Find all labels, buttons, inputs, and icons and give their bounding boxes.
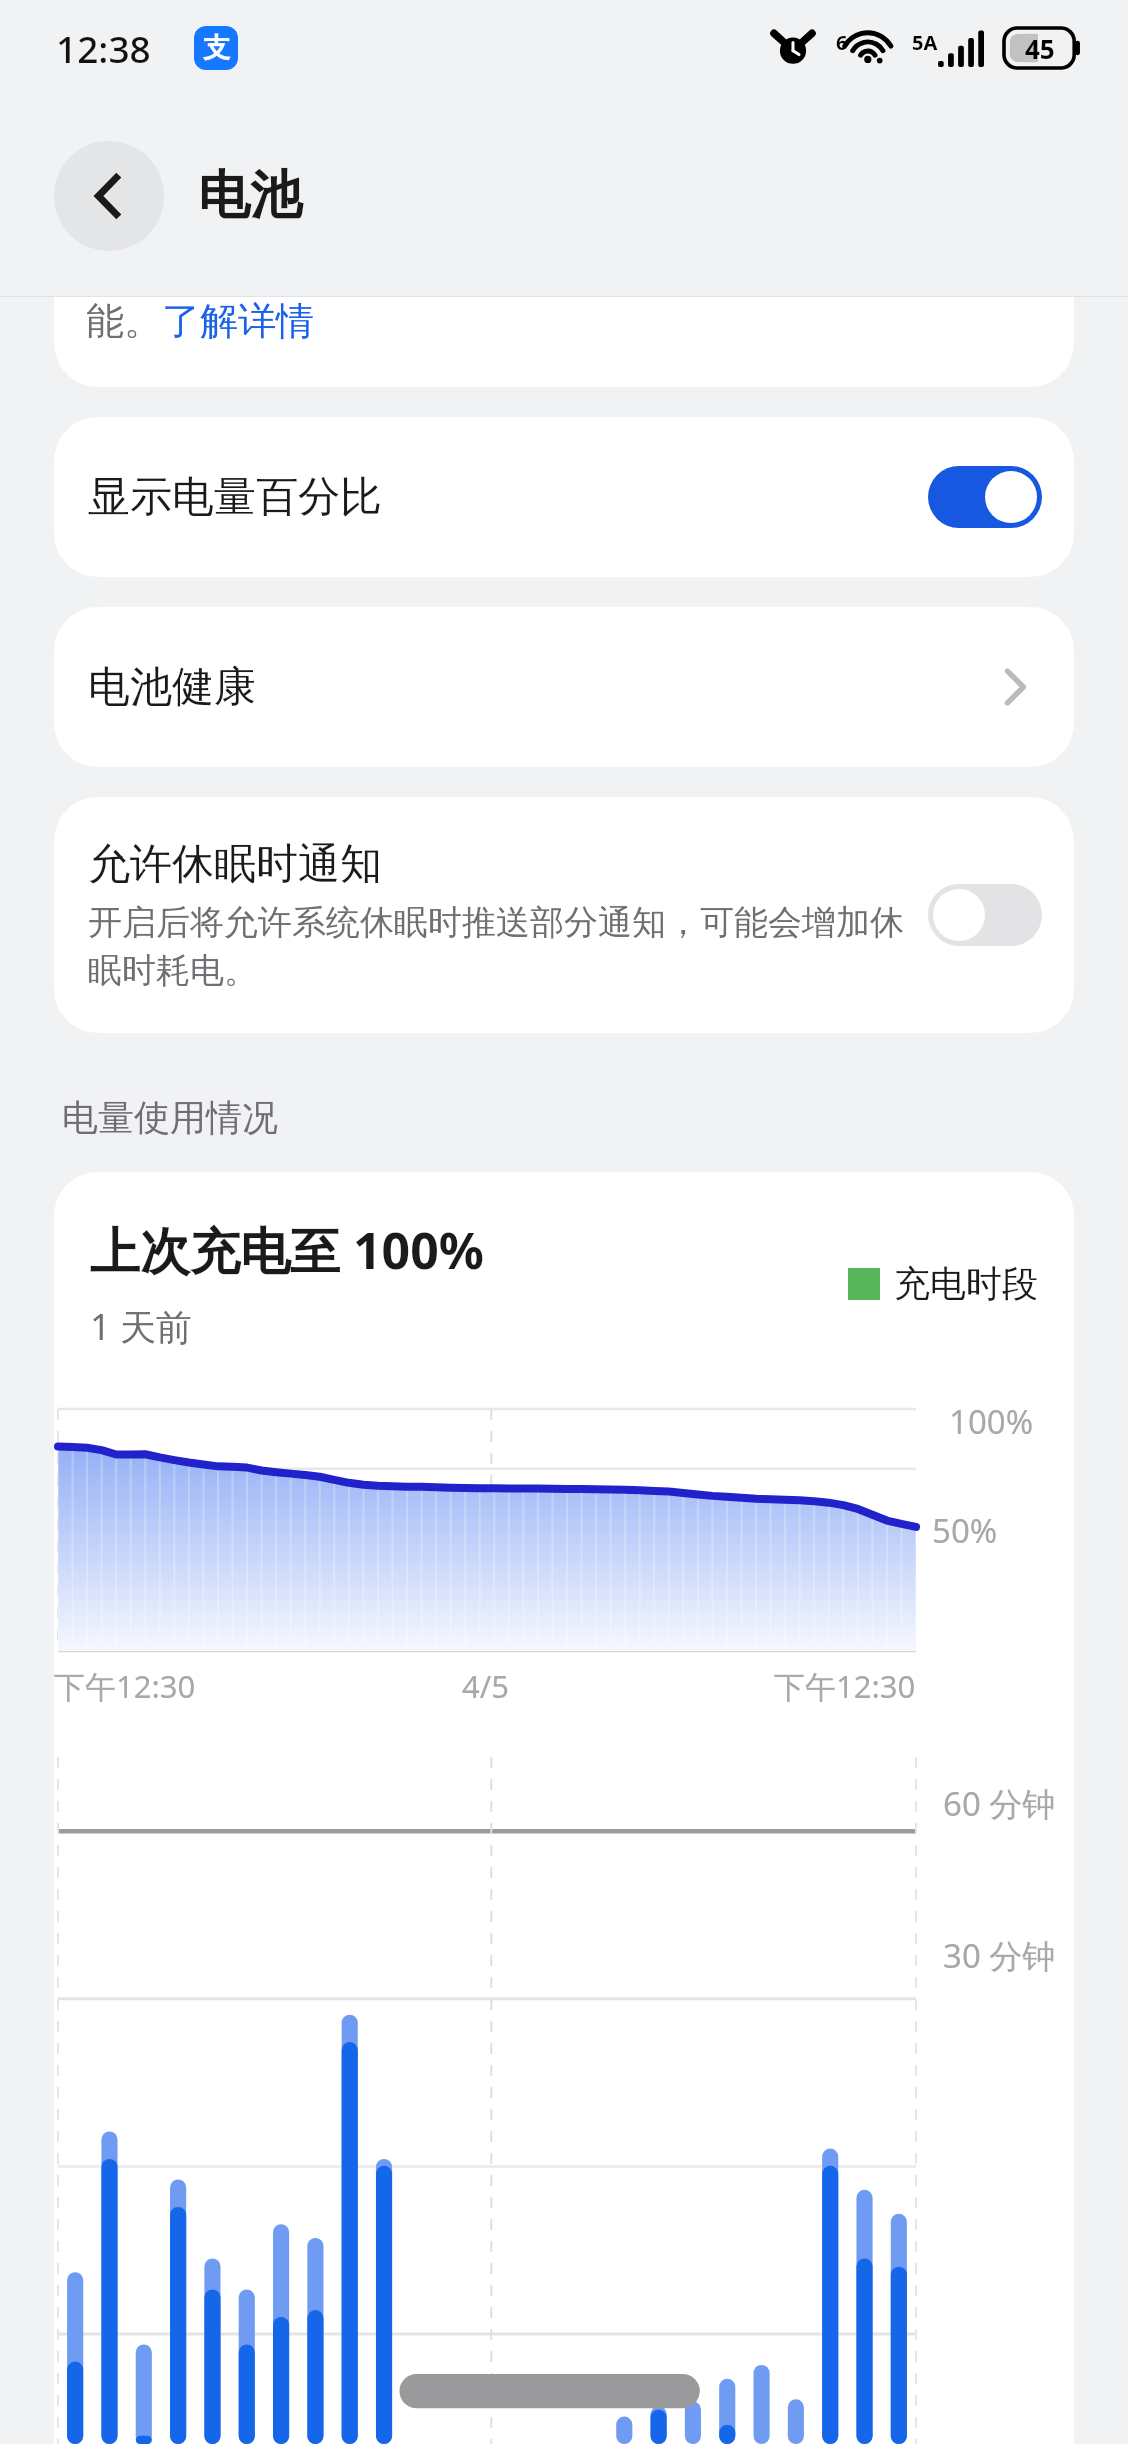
- staticText: 12:38: [56, 23, 151, 73]
- staticText: 能。: [86, 297, 162, 345]
- staticText: 45: [1025, 31, 1055, 66]
- staticText: 6: [836, 29, 848, 56]
- staticText: 支: [203, 31, 230, 65]
- staticText: 电池: [198, 163, 302, 229]
- button[interactable]: 允许休眠时通知: [54, 797, 1074, 1033]
- button[interactable]: 已开启: [928, 466, 1042, 528]
- button[interactable]: 显示电量百分比开关: [54, 417, 1074, 577]
- staticText: 充电时段: [894, 1261, 1038, 1306]
- button[interactable]: 已关闭: [928, 884, 1042, 946]
- staticText: 上次充电至 100%: [90, 1216, 484, 1284]
- staticText: 1 天前: [90, 1302, 192, 1351]
- other: WiFi 6: [836, 29, 892, 67]
- other: 信号: [912, 29, 984, 67]
- staticText: 了解详情: [162, 297, 314, 345]
- other: 闹钟: [774, 29, 812, 67]
- staticText: 电池健康: [88, 661, 996, 714]
- staticText: 电量使用情况: [62, 1095, 278, 1140]
- staticText: 显示电量百分比: [88, 471, 928, 524]
- other: 电量 45%: [1004, 28, 1082, 68]
- staticText: 4/5: [462, 1665, 509, 1707]
- staticText: 允许休眠时通知: [88, 838, 382, 891]
- button[interactable]: 返回: [54, 141, 164, 251]
- staticText: 100%: [949, 1399, 1034, 1444]
- staticText: 60 分钟: [943, 1781, 1056, 1826]
- staticText: 下午12:30: [54, 1665, 196, 1707]
- staticText: 开启后将允许系统休眠时推送部分通知，可能会增加休眠时耗电。: [88, 901, 910, 992]
- button[interactable]: 电池健康: [54, 607, 1074, 767]
- staticText: 30 分钟: [943, 1933, 1056, 1978]
- button[interactable]: 能。: [54, 297, 1074, 387]
- staticText: 50%: [932, 1508, 998, 1553]
- staticText: 5A: [912, 29, 938, 56]
- staticText: 下午12:30: [774, 1665, 916, 1707]
